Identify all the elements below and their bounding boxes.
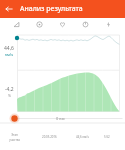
- button[interactable]: Speed: [5, 18, 28, 30]
- staticText: 44,6 км/ч: [76, 135, 90, 139]
- button[interactable]: Этап участка: [0, 124, 28, 150]
- staticText: %: [8, 93, 11, 98]
- staticText: -4,2: [5, 86, 14, 93]
- staticText: 5:52: [104, 135, 110, 139]
- staticText: 0 км: [56, 116, 72, 121]
- button[interactable]: Cadence: [74, 18, 97, 30]
- staticText: Этап участка: [9, 133, 20, 142]
- staticText: км/ч: [5, 52, 14, 57]
- staticText: Анализ результата: [20, 4, 83, 14]
- button[interactable]: Back: [0, 0, 18, 18]
- staticText: 20.05.2016: [42, 135, 57, 139]
- button[interactable]: Location: [28, 18, 51, 30]
- button[interactable]: Heart rate: [51, 18, 74, 30]
- staticText: 44,6: [4, 45, 14, 52]
- button[interactable]: Power: [97, 18, 120, 30]
- button[interactable]: 5:52: [94, 124, 120, 150]
- button[interactable]: 20.05.2016: [28, 124, 71, 150]
- button[interactable]: 44,6 км/ч: [71, 124, 94, 150]
